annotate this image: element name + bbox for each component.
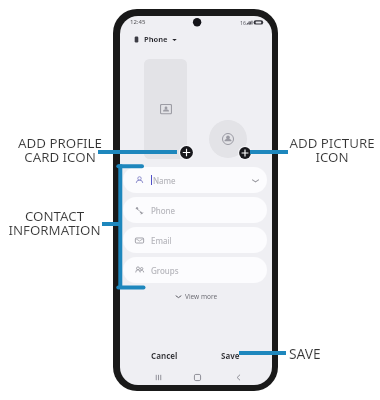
button[interactable]: Phone bbox=[133, 32, 177, 46]
staticText: CONTACT INFORMATION bbox=[8, 207, 101, 239]
staticText: 16.4 bbox=[240, 19, 251, 26]
button[interactable]: Cancel bbox=[138, 344, 190, 366]
button[interactable]: Name bbox=[123, 167, 267, 193]
staticText: Phone bbox=[144, 34, 168, 44]
staticText: Email bbox=[151, 235, 172, 246]
staticText: View more bbox=[185, 292, 218, 301]
button[interactable]: Add profile card bbox=[179, 145, 194, 160]
staticText: Cancel bbox=[151, 350, 178, 361]
button[interactable]: View more bbox=[120, 288, 272, 304]
staticText: Groups bbox=[151, 265, 179, 276]
button[interactable]: Profile card bbox=[144, 59, 187, 159]
staticText: ADD PICTURE ICON bbox=[289, 134, 375, 166]
button[interactable]: Profile picture bbox=[209, 120, 247, 158]
button[interactable]: Groups bbox=[123, 257, 267, 283]
staticText: Phone bbox=[151, 205, 176, 216]
button[interactable]: Save bbox=[204, 344, 256, 366]
button[interactable]: Email bbox=[123, 227, 267, 253]
staticText: ADD PROFILE CARD ICON bbox=[18, 134, 102, 166]
staticText: Save bbox=[221, 350, 240, 361]
staticText: Name bbox=[153, 175, 176, 186]
button[interactable]: Home bbox=[187, 367, 207, 385]
staticText: SAVE bbox=[289, 344, 321, 363]
button[interactable]: Phone bbox=[123, 197, 267, 223]
button[interactable]: Back bbox=[228, 367, 248, 385]
staticText: 12:45 bbox=[130, 18, 146, 26]
button[interactable]: Add picture bbox=[238, 146, 252, 160]
button[interactable]: Recent apps bbox=[148, 367, 168, 385]
